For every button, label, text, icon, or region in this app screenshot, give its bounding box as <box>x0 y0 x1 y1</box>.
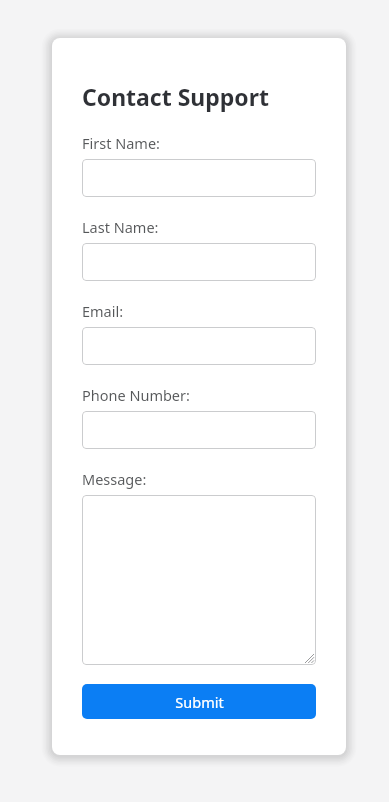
button[interactable]: Last Name input <box>82 243 316 281</box>
button[interactable]: Message input <box>82 495 316 665</box>
staticText: Email: <box>82 301 124 321</box>
staticText: Phone Number: <box>82 385 190 405</box>
button[interactable]: First Name input <box>82 159 316 197</box>
staticText: Message: <box>82 469 147 489</box>
staticText: Contact Support <box>82 81 270 112</box>
staticText: Submit <box>175 692 224 712</box>
button[interactable]: Submit <box>82 684 316 719</box>
button[interactable]: Phone Number input <box>82 411 316 449</box>
button[interactable]: Email input <box>82 327 316 365</box>
staticText: First Name: <box>82 133 160 153</box>
staticText: Last Name: <box>82 217 159 237</box>
